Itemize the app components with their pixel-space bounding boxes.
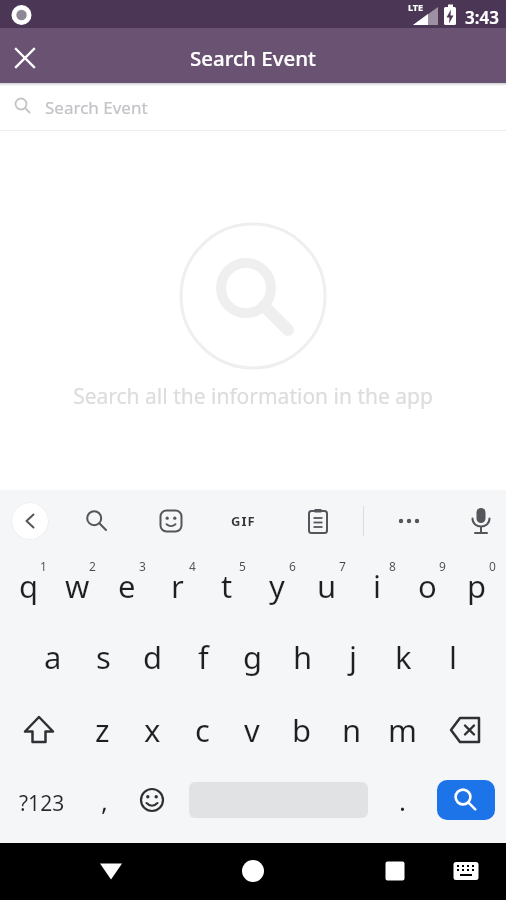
staticText: k	[395, 636, 412, 678]
button[interactable]: b	[277, 694, 327, 766]
button[interactable]: q	[4, 551, 53, 620]
staticText: 4	[189, 558, 196, 574]
button[interactable]	[2, 33, 48, 79]
button[interactable]	[229, 847, 277, 895]
staticText: q	[19, 565, 39, 607]
staticText: e	[118, 565, 136, 607]
button[interactable]: l	[428, 620, 478, 694]
button[interactable]	[147, 497, 195, 545]
button[interactable]: e	[102, 551, 152, 620]
button[interactable]: n	[327, 694, 377, 766]
staticText: i	[373, 565, 381, 607]
staticText: m	[388, 709, 417, 751]
button[interactable]: o	[402, 551, 452, 620]
staticText: f	[198, 636, 209, 678]
staticText: w	[65, 565, 90, 607]
button[interactable]: d	[128, 620, 178, 694]
button[interactable]: p	[452, 551, 502, 620]
button[interactable]: x	[127, 694, 177, 766]
button[interactable]: j	[328, 620, 378, 694]
button[interactable]: c	[177, 694, 227, 766]
staticText: d	[143, 636, 163, 678]
staticText: v	[244, 709, 260, 751]
staticText: a	[44, 636, 62, 678]
staticText: s	[96, 636, 111, 678]
staticText: 3:43	[465, 6, 499, 29]
staticText: z	[95, 709, 110, 751]
button[interactable]	[385, 497, 433, 545]
button[interactable]: a	[28, 620, 78, 694]
staticText: p	[467, 565, 487, 607]
button[interactable]: f	[178, 620, 228, 694]
staticText: n	[342, 709, 362, 751]
button[interactable]: i	[352, 551, 402, 620]
button[interactable]: u	[302, 551, 352, 620]
button[interactable]	[0, 694, 78, 766]
staticText: h	[293, 636, 313, 678]
button[interactable]: v	[227, 694, 277, 766]
button[interactable]	[427, 694, 506, 766]
staticText: g	[243, 636, 263, 678]
button[interactable]: ?123	[0, 766, 84, 834]
staticText: 3	[139, 558, 146, 574]
staticText: x	[144, 709, 161, 751]
button[interactable]: g	[228, 620, 278, 694]
staticText: 8	[389, 558, 396, 574]
button[interactable]: GIF	[219, 497, 267, 545]
button[interactable]	[294, 497, 342, 545]
button[interactable]: t	[202, 551, 252, 620]
button[interactable]: m	[377, 694, 427, 766]
staticText: 9	[439, 558, 446, 574]
button[interactable]: .	[368, 766, 437, 834]
staticText: 5	[239, 558, 246, 574]
staticText: .	[399, 783, 406, 818]
staticText: LTE	[408, 1, 424, 13]
staticText: c	[195, 709, 210, 751]
button[interactable]	[437, 780, 495, 820]
staticText: y	[269, 565, 285, 607]
button[interactable]	[124, 766, 176, 834]
staticText: Search all the information in the app	[0, 382, 506, 411]
button[interactable]: z	[78, 694, 127, 766]
staticText: j	[349, 636, 357, 678]
staticText: Search Event	[45, 96, 148, 119]
button[interactable]	[442, 847, 490, 895]
staticText: 6	[289, 558, 296, 574]
staticText: ?123	[19, 789, 65, 818]
staticText: l	[449, 636, 457, 678]
button[interactable]: h	[278, 620, 328, 694]
button[interactable]: k	[378, 620, 428, 694]
staticText: Search Event	[190, 44, 316, 72]
staticText: 1	[40, 558, 47, 574]
staticText: u	[317, 565, 337, 607]
button[interactable]: ,	[84, 766, 124, 834]
staticText: o	[418, 565, 437, 607]
staticText: 2	[89, 558, 96, 574]
button[interactable]: y	[252, 551, 302, 620]
button[interactable]	[457, 497, 505, 545]
staticText: ,	[101, 783, 108, 818]
button[interactable]: s	[78, 620, 128, 694]
staticText: GIF	[231, 512, 256, 530]
staticText: 0	[489, 558, 496, 574]
button[interactable]	[371, 847, 419, 895]
staticText: b	[292, 709, 312, 751]
button[interactable]: w	[53, 551, 102, 620]
button[interactable]	[87, 847, 135, 895]
button[interactable]: r	[152, 551, 202, 620]
staticText: t	[221, 565, 233, 607]
button[interactable]: Search Event	[0, 83, 506, 131]
button[interactable]	[73, 497, 121, 545]
button[interactable]	[6, 497, 54, 545]
staticText: 7	[339, 558, 346, 574]
staticText: r	[171, 565, 184, 607]
